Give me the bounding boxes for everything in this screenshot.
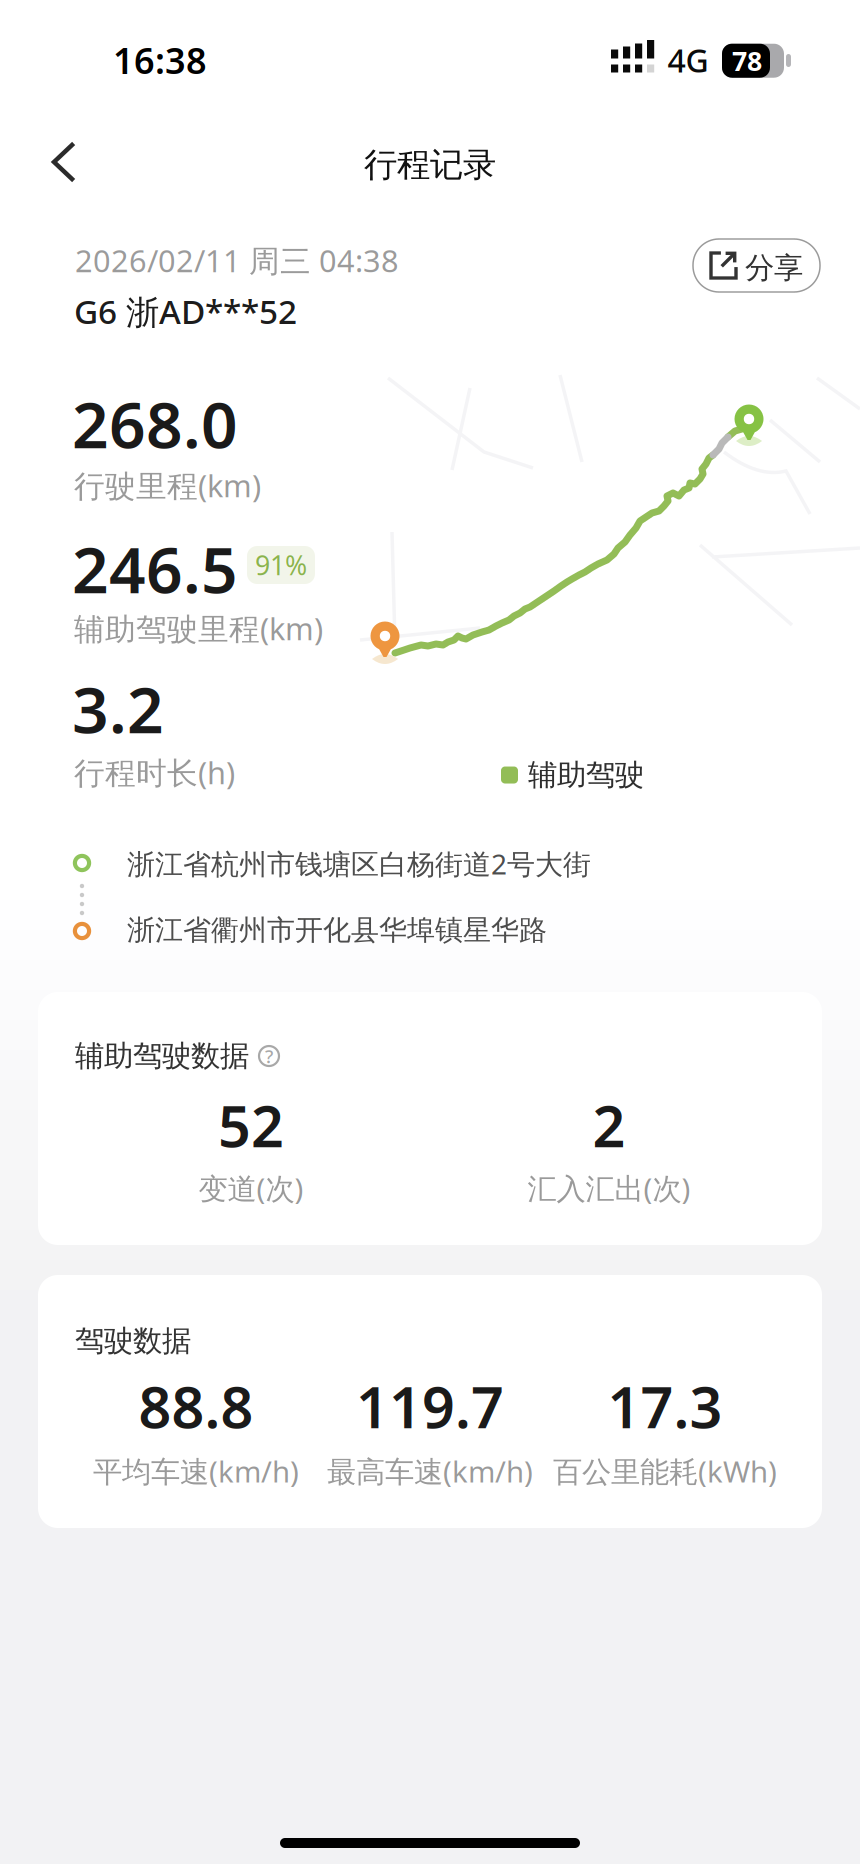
staticText: 78 <box>732 43 762 78</box>
staticText: 行程时长(h) <box>74 752 235 793</box>
staticText: 辅助驾驶里程(km) <box>74 608 323 649</box>
staticText: 最高车速(km/h) <box>327 1451 533 1490</box>
staticText: 17.3 <box>607 1368 722 1444</box>
staticText: 汇入汇出(次) <box>527 1168 690 1207</box>
staticText: 浙江省杭州市钱塘区白杨街道2号大街 <box>127 845 591 882</box>
staticText: 2026/02/11 周三 04:38 <box>75 240 399 281</box>
staticText: 16:38 <box>113 36 207 84</box>
staticText: 变道(次) <box>198 1168 303 1207</box>
staticText: 行程记录 <box>364 144 496 185</box>
staticText: 119.7 <box>356 1368 504 1444</box>
staticText: 246.5 <box>72 526 238 611</box>
staticText: 52 <box>218 1087 284 1163</box>
staticText: 百公里能耗(kWh) <box>553 1451 777 1490</box>
staticText: G6 浙AD***52 <box>74 289 297 333</box>
button[interactable] <box>30 132 90 192</box>
staticText: 3.2 <box>72 666 164 751</box>
staticText: 平均车速(km/h) <box>93 1451 299 1490</box>
staticText: 4G <box>667 39 708 81</box>
staticText: 辅助驾驶 <box>528 757 644 793</box>
staticText: 浙江省衢州市开化县华埠镇星华路 <box>127 913 547 947</box>
staticText: ? <box>265 1044 273 1068</box>
staticText: 驾驶数据 <box>75 1323 191 1359</box>
staticText: 分享 <box>745 250 803 286</box>
staticText: 2 <box>592 1087 625 1163</box>
staticText: 91% <box>255 547 307 583</box>
staticText: 行驶里程(km) <box>74 465 261 506</box>
button[interactable]: ? <box>257 1044 281 1068</box>
staticText: 88.8 <box>138 1368 253 1444</box>
button[interactable]: 分享 <box>693 239 820 292</box>
staticText: 268.0 <box>72 381 238 466</box>
staticText: 辅助驾驶数据 <box>75 1038 249 1074</box>
